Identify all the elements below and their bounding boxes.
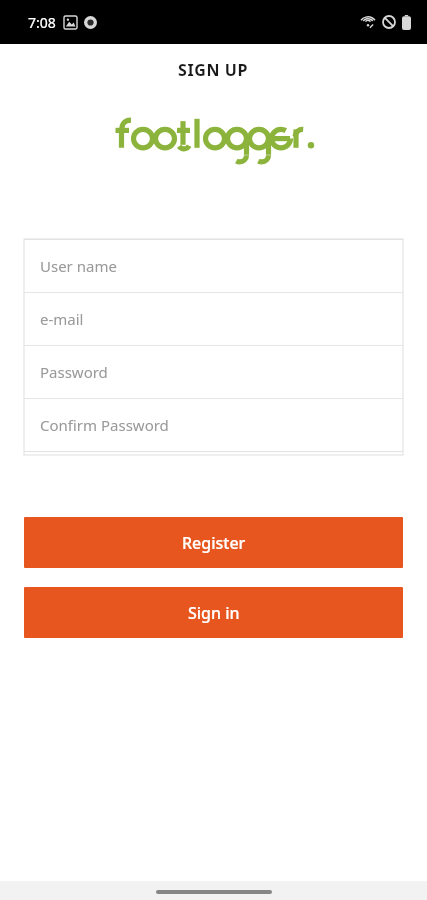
staticText: User name <box>40 256 117 276</box>
staticText: 7:08 <box>28 13 56 32</box>
button[interactable]: e-mail <box>24 293 403 345</box>
staticText: Sign in <box>188 602 240 624</box>
staticText: SIGN UP <box>178 59 249 81</box>
button[interactable]: User name <box>24 240 403 292</box>
button[interactable]: Register <box>24 517 403 568</box>
staticText: Confirm Password <box>40 415 169 435</box>
button[interactable]: Password <box>24 346 403 398</box>
staticText: Register <box>182 532 246 554</box>
button[interactable]: Confirm Password <box>24 399 403 451</box>
staticText: Password <box>40 362 108 382</box>
button[interactable]: Sign in <box>24 587 403 638</box>
staticText: e-mail <box>40 309 84 329</box>
